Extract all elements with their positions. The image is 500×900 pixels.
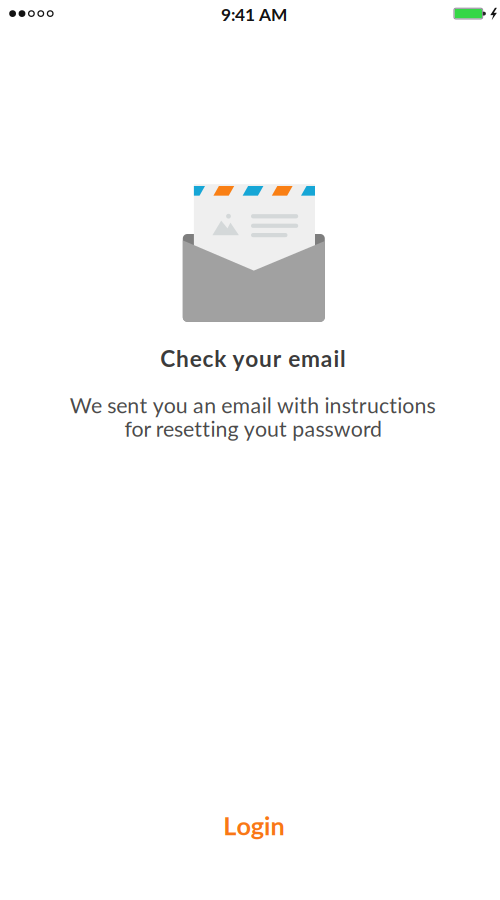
button[interactable]: Login (164, 801, 344, 849)
staticText: We sent you an email with instructions (70, 392, 436, 418)
staticText: 9:41 AM (221, 4, 287, 25)
staticText: Check your email (160, 345, 346, 372)
staticText: Login (223, 810, 284, 841)
staticText: for resetting yout password (124, 416, 382, 441)
